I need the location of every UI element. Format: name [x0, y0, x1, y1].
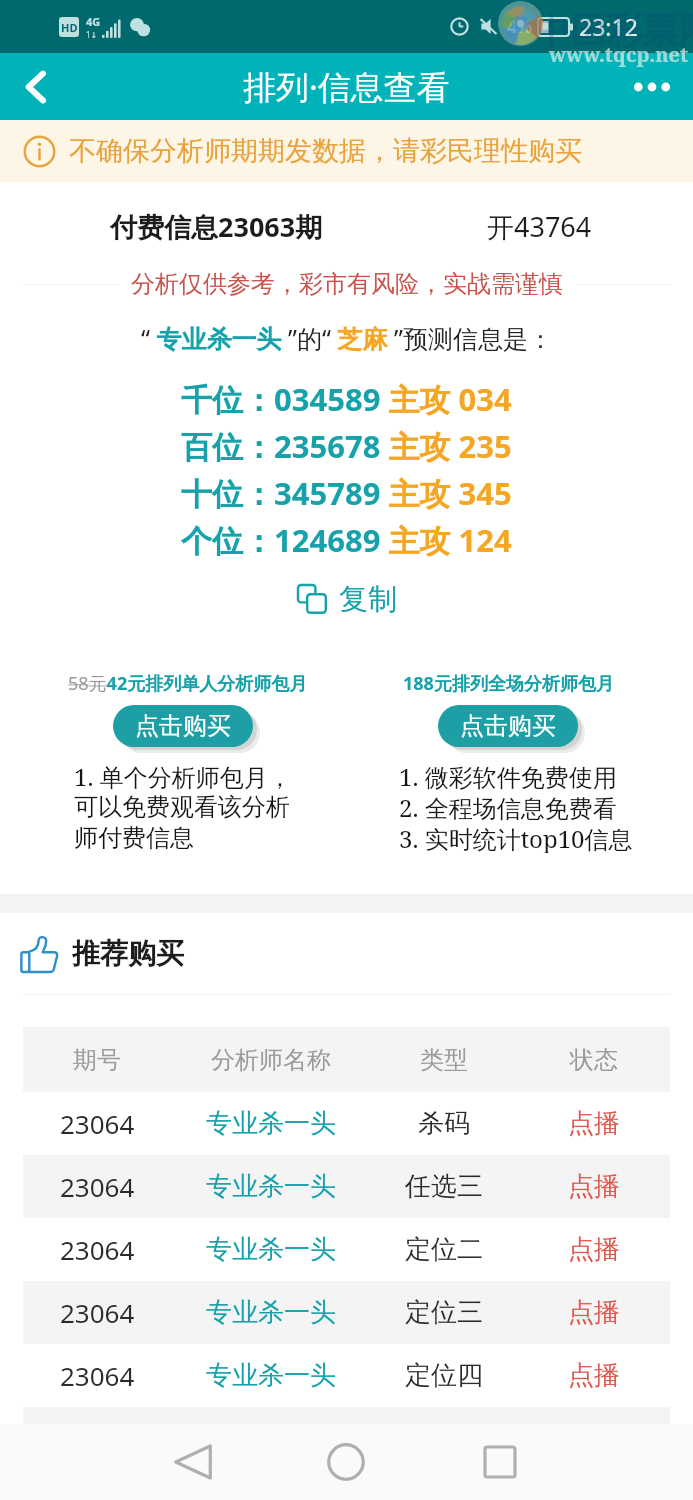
staticText: 千位：034589 主攻 034 — [181, 378, 512, 420]
staticText: 专业杀一头 — [206, 1107, 336, 1140]
staticText: 不确保分析师期期发数据，请彩民理性购买 — [69, 134, 582, 168]
button[interactable]: 点击购买 — [113, 705, 253, 747]
staticText: 23064 — [60, 1106, 135, 1141]
staticText: 1. 单个分析师包月， — [74, 760, 292, 791]
staticText: 定位三 — [405, 1296, 483, 1329]
button[interactable]: 23064 — [23, 1281, 670, 1344]
staticText: 专业杀一头 — [206, 1170, 336, 1203]
staticText: 开43764 — [487, 208, 592, 245]
button[interactable]: 23064 — [23, 1218, 670, 1281]
button[interactable]: 点击购买 — [438, 705, 578, 747]
staticText: 专业杀一头 — [206, 1359, 336, 1392]
staticText: 中国彩票网 — [534, 8, 693, 53]
button[interactable]: 复制 — [287, 577, 407, 621]
staticText: HD — [61, 20, 78, 35]
staticText: 点播 — [568, 1296, 620, 1329]
staticText: 点播 — [568, 1170, 620, 1203]
button[interactable]: 23064 — [23, 1092, 670, 1155]
staticText: 付费信息23063期 — [110, 208, 323, 245]
staticText: “ 专业杀一头 ”的“ 芝麻 ”预测信息是： — [141, 321, 553, 355]
staticText: 定位四 — [405, 1359, 483, 1392]
button[interactable]: 23064 — [23, 1344, 670, 1407]
staticText: 类型 — [420, 1045, 468, 1075]
staticText: 杀码 — [418, 1107, 470, 1140]
staticText: 可以免费观看该分析 — [74, 792, 290, 822]
button[interactable]: Back — [157, 1440, 229, 1484]
staticText: 任选三 — [405, 1170, 483, 1203]
staticText: 点击购买 — [460, 711, 556, 741]
staticText: 1↓ — [86, 29, 98, 40]
staticText: 师付费信息 — [74, 823, 194, 853]
staticText: 4G — [86, 14, 101, 29]
staticText: 百位：235678 主攻 235 — [181, 425, 512, 467]
staticText: 分析仅供参考，彩市有风险，实战需谨慎 — [131, 269, 563, 299]
staticText: 推荐购买 — [72, 936, 184, 971]
button[interactable]: Recents — [464, 1440, 536, 1484]
staticText: 复制 — [339, 581, 397, 617]
staticText: 4% — [507, 14, 533, 39]
button[interactable]: 23064 — [23, 1407, 670, 1470]
staticText: 23064 — [60, 1358, 135, 1393]
staticText: 23064 — [60, 1232, 135, 1267]
staticText: 点播 — [568, 1107, 620, 1140]
staticText: 点播 — [568, 1233, 620, 1266]
staticText: 23:12 — [579, 11, 638, 42]
staticText: 十位：345789 主攻 345 — [181, 472, 512, 514]
staticText: 58元42元排列单人分析师包月 — [68, 671, 308, 696]
staticText: 专业杀一头 — [206, 1296, 336, 1329]
staticText: 专业杀一头 — [206, 1233, 336, 1266]
staticText: 状态 — [570, 1045, 618, 1075]
staticText: 23064 — [60, 1295, 135, 1330]
button[interactable]: Back — [6, 57, 66, 117]
staticText: 2. 全程场信息免费看 — [399, 791, 617, 822]
staticText: 个位：124689 主攻 124 — [181, 519, 512, 561]
staticText: 分析师名称 — [211, 1045, 331, 1075]
staticText: 23064 — [60, 1169, 135, 1204]
button[interactable]: 23064 — [23, 1155, 670, 1218]
staticText: 1. 微彩软件免费使用 — [399, 760, 617, 791]
staticText: 3. 实时统计top10信息 — [399, 822, 633, 853]
staticText: 188元排列全场分析师包月 — [403, 671, 614, 696]
button[interactable]: Home — [310, 1440, 382, 1484]
staticText: 期号 — [73, 1045, 121, 1075]
staticText: www.tqcp.net — [549, 41, 689, 68]
staticText: 定位二 — [405, 1233, 483, 1266]
staticText: 点播 — [568, 1359, 620, 1392]
staticText: 点击购买 — [135, 711, 231, 741]
staticText: 专业杀一头 — [206, 1422, 336, 1455]
staticText: 排列·信息查看 — [243, 64, 450, 109]
button[interactable]: More options — [625, 60, 679, 114]
